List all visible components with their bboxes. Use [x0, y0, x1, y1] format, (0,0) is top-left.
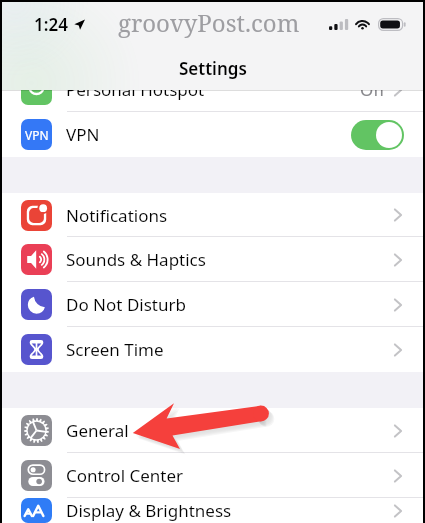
button[interactable]: Sounds & Haptics	[2, 237, 423, 282]
button[interactable]: Control Center	[2, 453, 423, 498]
staticText: Off	[360, 78, 385, 101]
button[interactable]: Personal Hotspot	[2, 67, 423, 112]
staticText: Personal Hotspot	[66, 78, 205, 101]
staticText: Notifications	[66, 204, 168, 227]
button[interactable]: Screen Time	[2, 327, 423, 372]
button[interactable]: General	[2, 408, 423, 453]
staticText: Sounds & Haptics	[66, 248, 206, 271]
button[interactable]: VPN	[2, 112, 423, 157]
staticText: Settings	[179, 57, 247, 80]
button[interactable]: Do Not Disturb	[2, 282, 423, 327]
button[interactable]: Display & Brightness	[2, 498, 423, 523]
staticText: VPN	[25, 127, 49, 143]
staticText: Display & Brightness	[66, 499, 232, 522]
staticText: groovyPost.com	[118, 6, 300, 39]
staticText: VPN	[66, 123, 100, 146]
staticText: 1:24	[34, 13, 68, 36]
button[interactable]: Notifications	[2, 193, 423, 237]
staticText: Control Center	[66, 464, 184, 487]
staticText: General	[66, 419, 129, 442]
button[interactable]: VPN toggle, on	[351, 120, 404, 150]
staticText: Do Not Disturb	[66, 293, 186, 316]
staticText: Screen Time	[66, 338, 164, 361]
